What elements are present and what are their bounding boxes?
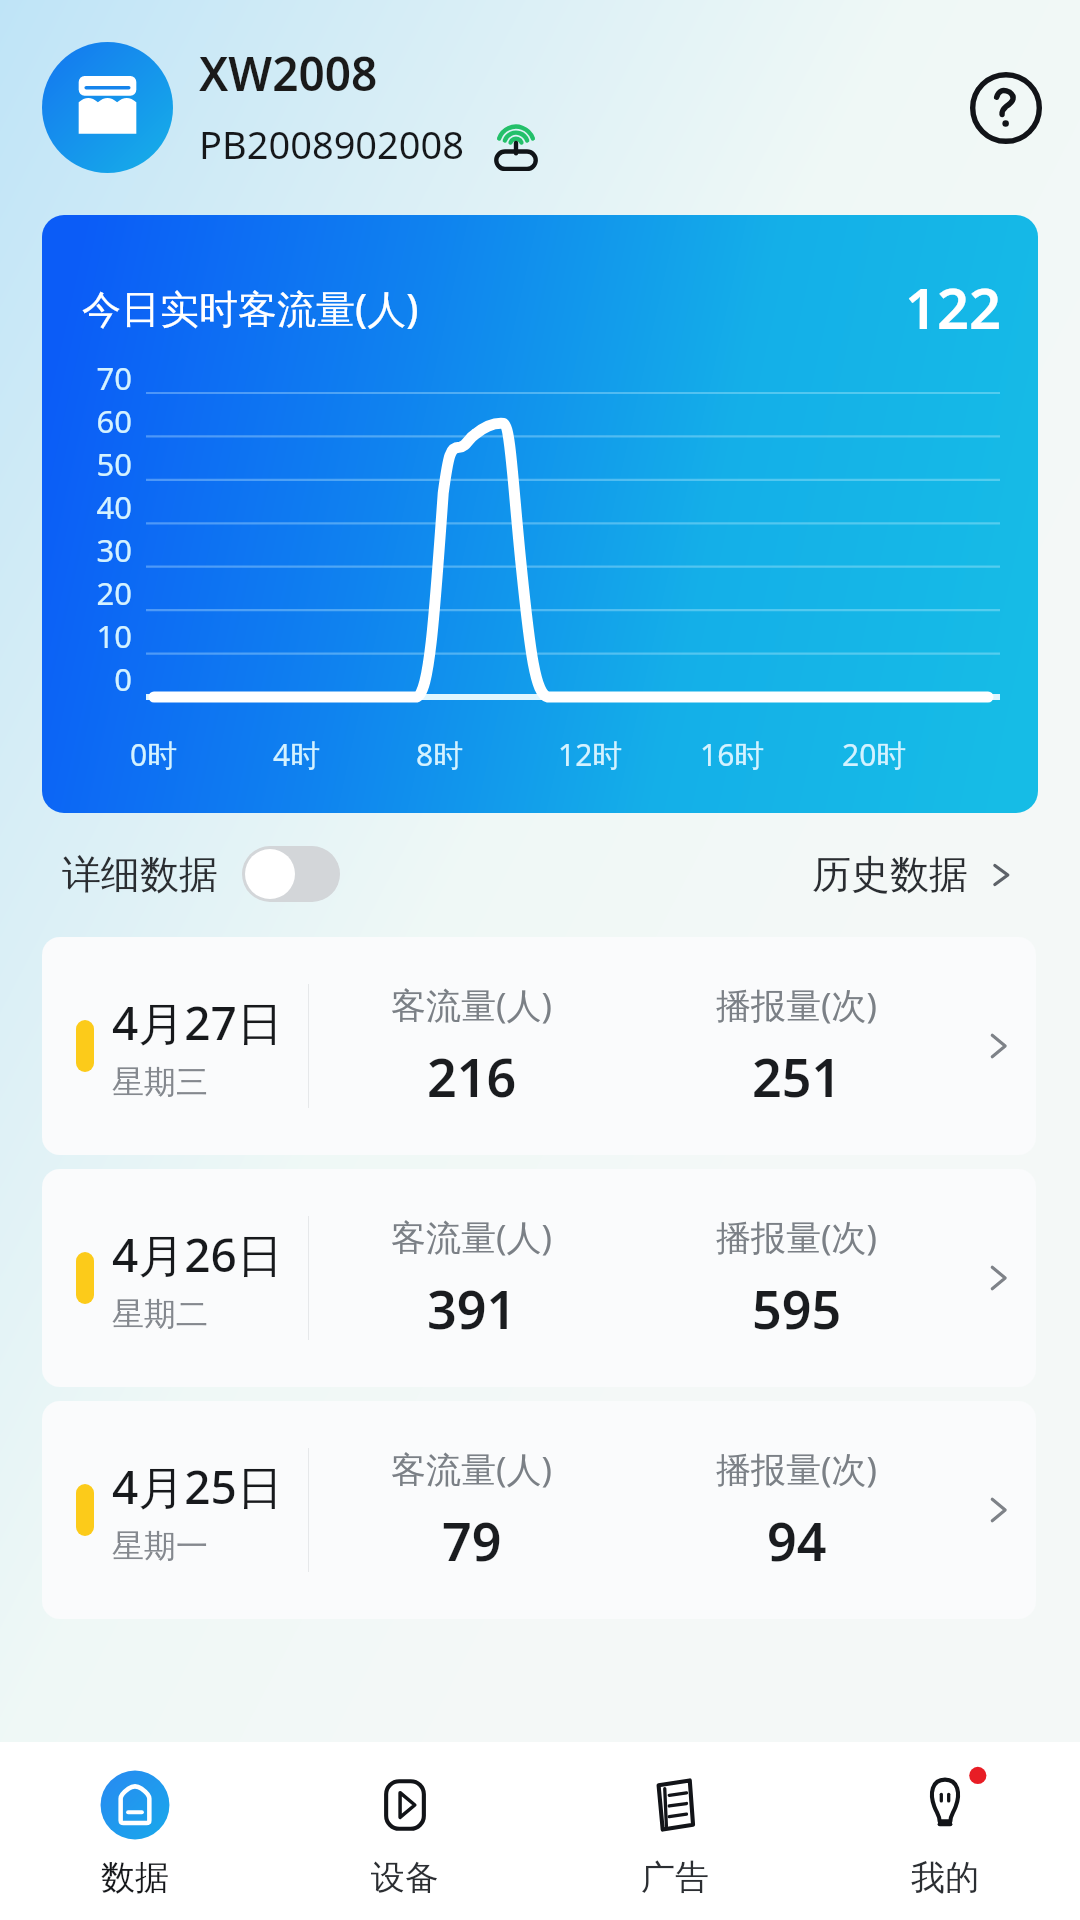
button[interactable]: 数据: [0, 1742, 270, 1920]
staticText: 8时: [416, 734, 464, 775]
staticText: 设备: [371, 1856, 439, 1899]
staticText: 播报量(次): [716, 1445, 878, 1493]
button[interactable]: 4月27日: [42, 937, 1036, 1155]
staticText: 星期二: [112, 1294, 208, 1334]
staticText: 391: [427, 1273, 517, 1344]
staticText: XW2008: [199, 42, 378, 105]
button[interactable]: Help: [970, 72, 1042, 144]
staticText: 20: [60, 572, 132, 614]
staticText: 20时: [842, 734, 907, 775]
staticText: 70: [60, 357, 132, 399]
staticText: 50: [60, 443, 132, 485]
button[interactable]: 设备: [270, 1742, 540, 1920]
staticText: 广告: [641, 1856, 709, 1899]
staticText: 10: [60, 615, 132, 657]
button[interactable]: 4月26日: [42, 1169, 1036, 1387]
staticText: 94: [767, 1505, 827, 1576]
staticText: 星期一: [112, 1526, 208, 1566]
staticText: 79: [442, 1505, 502, 1576]
staticText: 客流量(人): [391, 1213, 553, 1261]
button[interactable]: 详细数据: [62, 846, 340, 902]
staticText: 40: [60, 486, 132, 528]
staticText: 60: [60, 400, 132, 442]
button[interactable]: 今日实时客流量(人): [42, 215, 1038, 813]
staticText: 4月25日: [112, 1455, 283, 1518]
staticText: 客流量(人): [391, 981, 553, 1029]
staticText: 216: [427, 1041, 517, 1112]
staticText: 251: [752, 1041, 842, 1112]
button[interactable]: 我的: [810, 1742, 1080, 1920]
staticText: 122: [905, 269, 1002, 345]
staticText: 16时: [700, 734, 765, 775]
staticText: 4月26日: [112, 1223, 283, 1286]
staticText: 4月27日: [112, 991, 283, 1054]
staticText: 0时: [130, 734, 178, 775]
staticText: 数据: [101, 1856, 169, 1899]
staticText: 595: [752, 1273, 842, 1344]
button[interactable]: 广告: [540, 1742, 810, 1920]
staticText: 30: [60, 529, 132, 571]
staticText: 星期三: [112, 1062, 208, 1102]
button[interactable]: 历史数据: [812, 850, 1018, 899]
staticText: 4时: [273, 734, 321, 775]
staticText: 12时: [558, 734, 623, 775]
staticText: 今日实时客流量(人): [82, 281, 905, 334]
button[interactable]: Device online: [487, 115, 545, 173]
button[interactable]: 4月25日: [42, 1401, 1036, 1619]
button[interactable]: Store avatar: [42, 42, 173, 173]
staticText: PB2008902008: [199, 118, 465, 170]
staticText: 我的: [911, 1856, 979, 1899]
staticText: 播报量(次): [716, 981, 878, 1029]
staticText: 详细数据: [62, 850, 218, 899]
staticText: 客流量(人): [391, 1445, 553, 1493]
staticText: 0: [60, 658, 132, 700]
staticText: 历史数据: [812, 850, 968, 899]
staticText: 播报量(次): [716, 1213, 878, 1261]
